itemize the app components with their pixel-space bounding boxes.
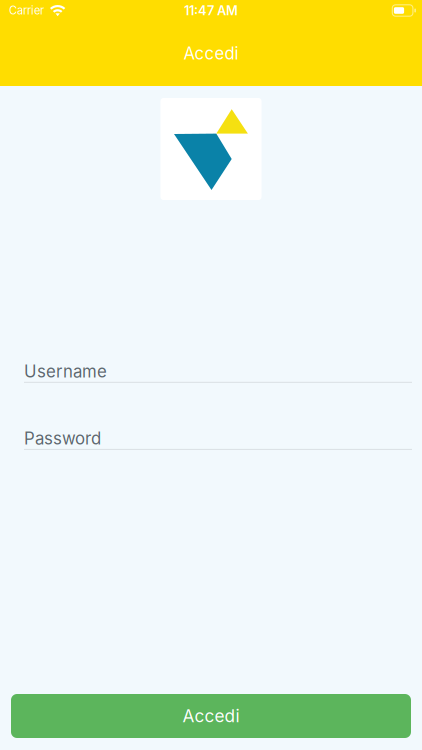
staticText: Username	[24, 361, 107, 381]
button[interactable]: Accedi	[0, 21, 422, 86]
staticText: Accedi	[183, 43, 238, 64]
staticText: 11:47 AM	[184, 3, 238, 18]
button[interactable]: Accedi	[11, 694, 411, 738]
staticText: Accedi	[182, 706, 239, 726]
staticText: Carrier	[9, 4, 44, 17]
staticText: Password	[24, 428, 101, 448]
